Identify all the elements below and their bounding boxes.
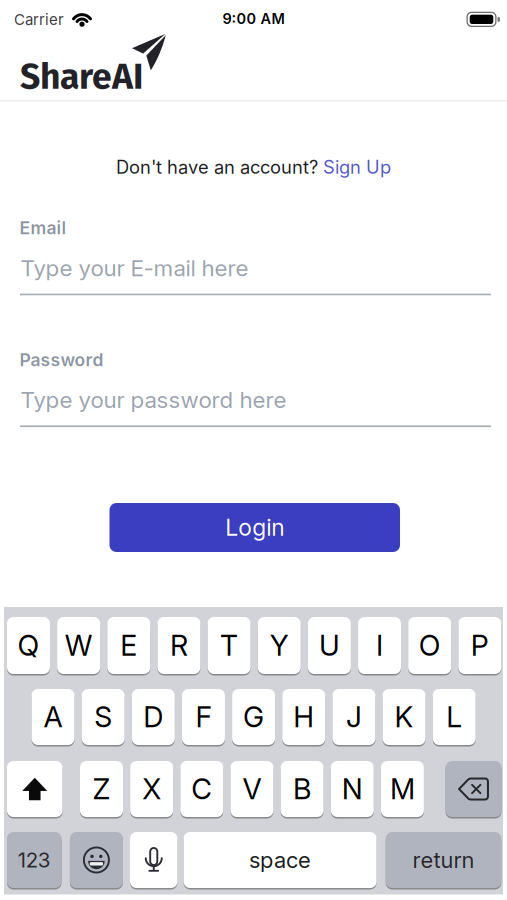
staticText: J [346, 700, 362, 734]
button[interactable]: Login [109, 503, 400, 552]
button[interactable]: I [358, 617, 401, 674]
button[interactable]: 123 [7, 832, 61, 888]
staticText: Z [92, 772, 110, 806]
staticText: space [249, 847, 311, 873]
button[interactable]: S [82, 689, 125, 745]
staticText: B [293, 772, 311, 806]
button[interactable]: R [157, 617, 200, 674]
staticText: Q [17, 628, 39, 663]
button[interactable] [445, 761, 501, 817]
staticText: Carrier [14, 10, 64, 29]
button[interactable]: E [107, 617, 150, 674]
button[interactable]: return [386, 832, 501, 888]
staticText: I [376, 628, 383, 663]
button[interactable] [70, 832, 123, 888]
button[interactable]: K [383, 689, 426, 745]
button[interactable]: M [381, 761, 424, 817]
button[interactable] [130, 832, 177, 888]
staticText: G [243, 700, 264, 734]
button[interactable]: V [230, 761, 273, 817]
button[interactable]: G [232, 689, 275, 745]
staticText: C [191, 772, 212, 806]
button[interactable]: space [184, 832, 377, 888]
staticText: R [170, 628, 188, 663]
button[interactable]: U [308, 617, 351, 674]
button[interactable]: W [57, 617, 100, 674]
staticText: Login [225, 514, 284, 541]
staticText: O [419, 628, 441, 663]
button[interactable]: J [332, 689, 375, 745]
staticText: K [395, 700, 414, 734]
staticText: W [65, 628, 93, 663]
button[interactable]: Type your E-mail here [20, 250, 491, 295]
button[interactable]: Type your password here [20, 382, 491, 427]
staticText: Don't have an account? [116, 156, 318, 178]
button[interactable]: B [281, 761, 324, 817]
staticText: T [220, 628, 238, 663]
button[interactable]: P [458, 617, 501, 674]
button[interactable]: C [180, 761, 223, 817]
staticText: L [446, 700, 462, 734]
button[interactable]: T [208, 617, 251, 674]
staticText: V [242, 772, 261, 806]
staticText: Password [19, 349, 103, 370]
button[interactable]: Z [80, 761, 123, 817]
staticText: Type your password here [20, 386, 286, 413]
button[interactable]: Sign Up [323, 156, 391, 178]
staticText: Y [270, 628, 289, 663]
staticText: N [342, 772, 363, 806]
staticText: 9:00 AM [222, 10, 284, 27]
staticText: E [120, 628, 137, 663]
staticText: M [390, 772, 415, 806]
staticText: S [94, 700, 112, 734]
button[interactable]: O [408, 617, 451, 674]
button[interactable]: D [132, 689, 175, 745]
staticText: H [293, 700, 314, 734]
staticText: P [471, 628, 489, 663]
staticText: X [142, 772, 161, 806]
staticText: return [412, 847, 474, 873]
staticText: Type your E-mail here [20, 254, 248, 282]
staticText: A [43, 700, 62, 734]
staticText: 123 [18, 848, 51, 872]
staticText: U [319, 628, 340, 663]
staticText: F [195, 700, 211, 734]
button[interactable]: L [433, 689, 476, 745]
button[interactable]: F [182, 689, 225, 745]
button[interactable]: Y [258, 617, 301, 674]
button[interactable]: H [282, 689, 325, 745]
button[interactable]: Q [7, 617, 50, 674]
staticText: Sign Up [323, 156, 391, 178]
button[interactable] [7, 761, 62, 817]
staticText: ShareAI [20, 55, 143, 98]
staticText: D [143, 700, 163, 734]
staticText: Email [19, 217, 66, 239]
button[interactable]: N [331, 761, 374, 817]
button[interactable]: X [130, 761, 173, 817]
button[interactable]: A [31, 689, 74, 745]
